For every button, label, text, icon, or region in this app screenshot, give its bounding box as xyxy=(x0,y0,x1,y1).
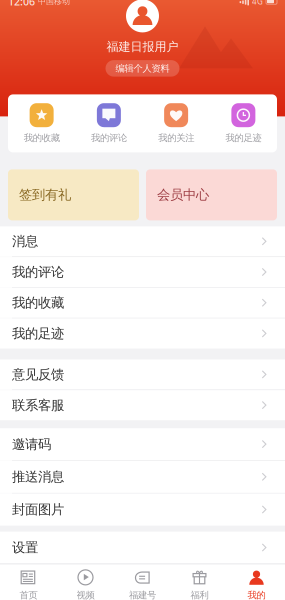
staticText: 我的评论 xyxy=(12,264,64,280)
staticText: 福建号 xyxy=(129,589,156,600)
button[interactable]: 首页 xyxy=(0,564,57,600)
staticText: 签到有礼 xyxy=(19,187,71,203)
staticText: 中国移动 xyxy=(38,0,70,6)
staticText: 我的收藏 xyxy=(12,295,64,311)
staticText: 会员中心 xyxy=(157,187,209,203)
staticText: 12:06 xyxy=(8,0,35,8)
staticText: 联系客服 xyxy=(12,397,64,413)
button[interactable]: 会员中心 xyxy=(146,169,277,220)
button[interactable]: 联系客服 xyxy=(0,390,285,420)
staticText: 我的足迹 xyxy=(225,132,261,144)
button[interactable]: 推送消息 xyxy=(0,461,285,493)
button[interactable]: 设置 xyxy=(0,532,285,564)
button[interactable]: 邀请码 xyxy=(0,428,285,460)
button[interactable]: 意见反馈 xyxy=(0,359,285,389)
button[interactable]: 视频 xyxy=(57,564,114,600)
button[interactable]: 我的收藏 xyxy=(8,94,75,152)
staticText: 我的评论 xyxy=(91,132,127,144)
button[interactable]: 福利 xyxy=(171,564,228,600)
button[interactable]: 我的关注 xyxy=(142,94,210,152)
staticText: 4G xyxy=(252,0,263,7)
staticText: 福利 xyxy=(190,589,208,600)
button[interactable]: 头像 xyxy=(126,0,159,32)
button[interactable]: 签到有礼 xyxy=(8,169,139,220)
button[interactable]: 我的收藏 xyxy=(0,288,285,318)
staticText: 意见反馈 xyxy=(12,366,64,383)
staticText: 封面图片 xyxy=(12,501,64,518)
staticText: 首页 xyxy=(19,589,37,600)
staticText: 推送消息 xyxy=(12,469,64,485)
button[interactable]: 我的足迹 xyxy=(210,94,277,152)
staticText: 我的足迹 xyxy=(12,325,64,342)
button[interactable]: 编辑个人资料 xyxy=(105,60,179,77)
staticText: 邀请码 xyxy=(12,436,51,452)
staticText: 我的 xyxy=(247,589,265,600)
button[interactable]: 我的评论 xyxy=(0,257,285,287)
button[interactable]: 消息 xyxy=(0,226,285,256)
staticText: 视频 xyxy=(76,589,94,600)
button[interactable]: 福建号 xyxy=(114,564,171,600)
button[interactable]: 我的足迹 xyxy=(0,318,285,348)
staticText: 编辑个人资料 xyxy=(115,63,169,74)
staticText: 消息 xyxy=(12,233,38,250)
button[interactable]: 我的 xyxy=(228,564,285,600)
button[interactable]: 封面图片 xyxy=(0,494,285,526)
staticText: 我的收藏 xyxy=(24,132,60,144)
staticText: 设置 xyxy=(12,539,38,556)
staticText: 福建日报用户 xyxy=(106,39,178,54)
button[interactable]: 我的评论 xyxy=(75,94,142,152)
staticText: 我的关注 xyxy=(158,132,194,144)
